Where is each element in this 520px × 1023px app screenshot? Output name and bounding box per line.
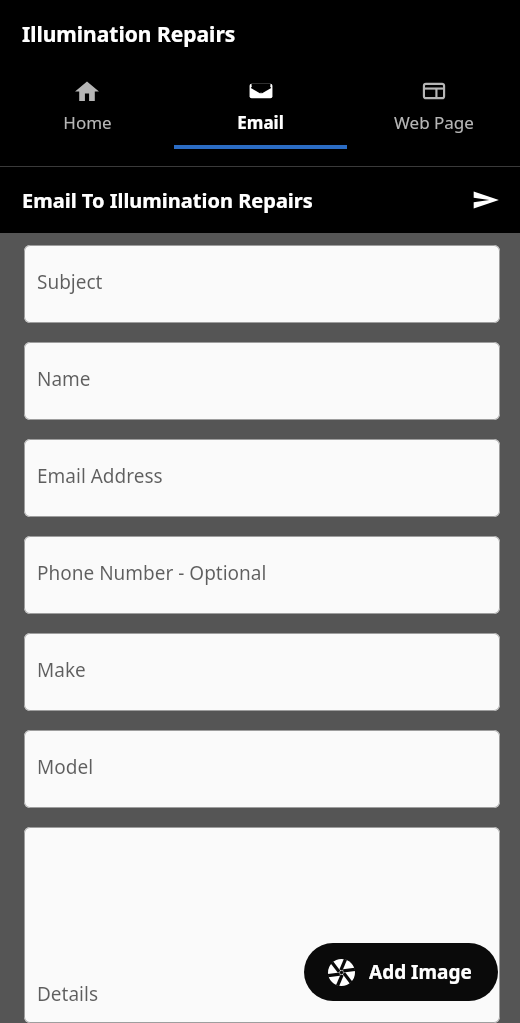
button[interactable]: Web Page	[347, 71, 520, 149]
staticText: Make	[37, 657, 86, 683]
staticText: Model	[37, 754, 94, 780]
staticText: Phone Number - Optional	[37, 560, 267, 586]
button[interactable]: Email	[174, 71, 347, 149]
button[interactable]: Add Image	[304, 943, 498, 1001]
button[interactable]: Subject	[24, 245, 500, 323]
staticText: Illumination Repairs	[22, 20, 236, 49]
button[interactable]: Details	[24, 827, 500, 1023]
staticText: Email Address	[37, 463, 163, 489]
button[interactable]: Home	[0, 71, 174, 149]
button[interactable]: Phone Number - Optional	[24, 536, 500, 614]
staticText: Name	[37, 366, 91, 392]
staticText: Subject	[37, 269, 103, 295]
staticText: Email	[237, 111, 284, 134]
staticText: Web Page	[394, 111, 474, 134]
button[interactable]: Email Address	[24, 439, 500, 517]
staticText: Details	[37, 981, 99, 1007]
staticText: Email To Illumination Repairs	[22, 187, 313, 214]
staticText: Add Image	[369, 959, 472, 985]
button[interactable]: Model	[24, 730, 500, 808]
other: Add Image	[328, 959, 355, 986]
button[interactable]: Send	[462, 176, 510, 224]
staticText: Home	[63, 111, 112, 134]
button[interactable]: Name	[24, 342, 500, 420]
button[interactable]: Make	[24, 633, 500, 711]
